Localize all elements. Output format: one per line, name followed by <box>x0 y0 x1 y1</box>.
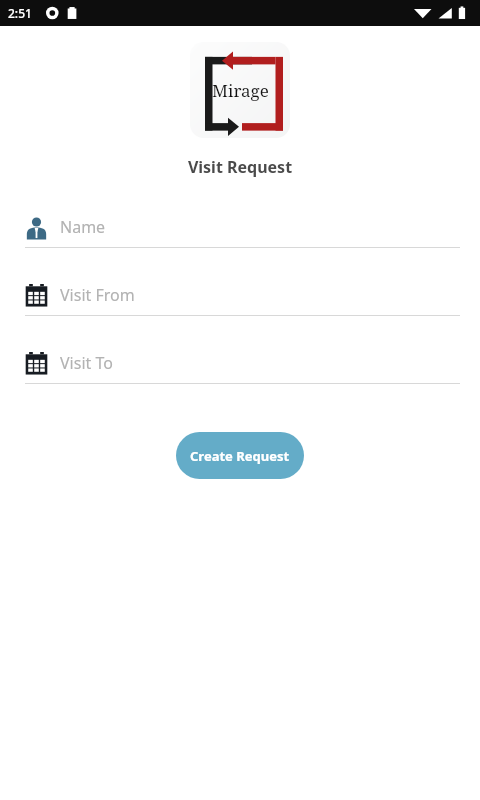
button[interactable]: Visit From <box>0 279 480 316</box>
staticText: 2:51 <box>8 5 32 21</box>
staticText: Visit Request <box>0 156 480 178</box>
button[interactable]: Name <box>0 211 480 248</box>
button[interactable]: Visit To <box>0 347 480 384</box>
staticText: Mirage <box>212 79 269 102</box>
staticText: Visit To <box>60 352 113 374</box>
staticText: Create Request <box>190 447 290 465</box>
staticText: Visit From <box>60 284 135 306</box>
button[interactable]: Create Request <box>176 432 304 479</box>
staticText: Name <box>60 216 106 238</box>
